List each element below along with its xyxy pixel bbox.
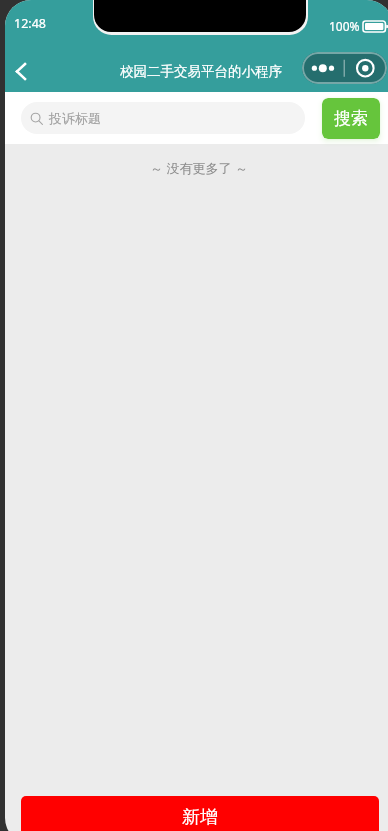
button[interactable]: Back [5, 56, 36, 87]
button[interactable]: 投诉标题 [21, 102, 305, 134]
staticText: 搜索 [334, 108, 368, 129]
staticText: ～ 没有更多了 ～ [5, 159, 388, 177]
staticText: 校园二手交易平台的小程序 [120, 63, 282, 80]
button[interactable]: Menu [302, 52, 387, 84]
button[interactable]: 新增 [21, 796, 379, 831]
staticText: 投诉标题 [49, 110, 101, 126]
staticText: 100% [329, 18, 360, 34]
staticText: 新增 [182, 806, 218, 829]
button[interactable]: 搜索 [322, 98, 380, 139]
staticText: 12:48 [14, 15, 46, 32]
